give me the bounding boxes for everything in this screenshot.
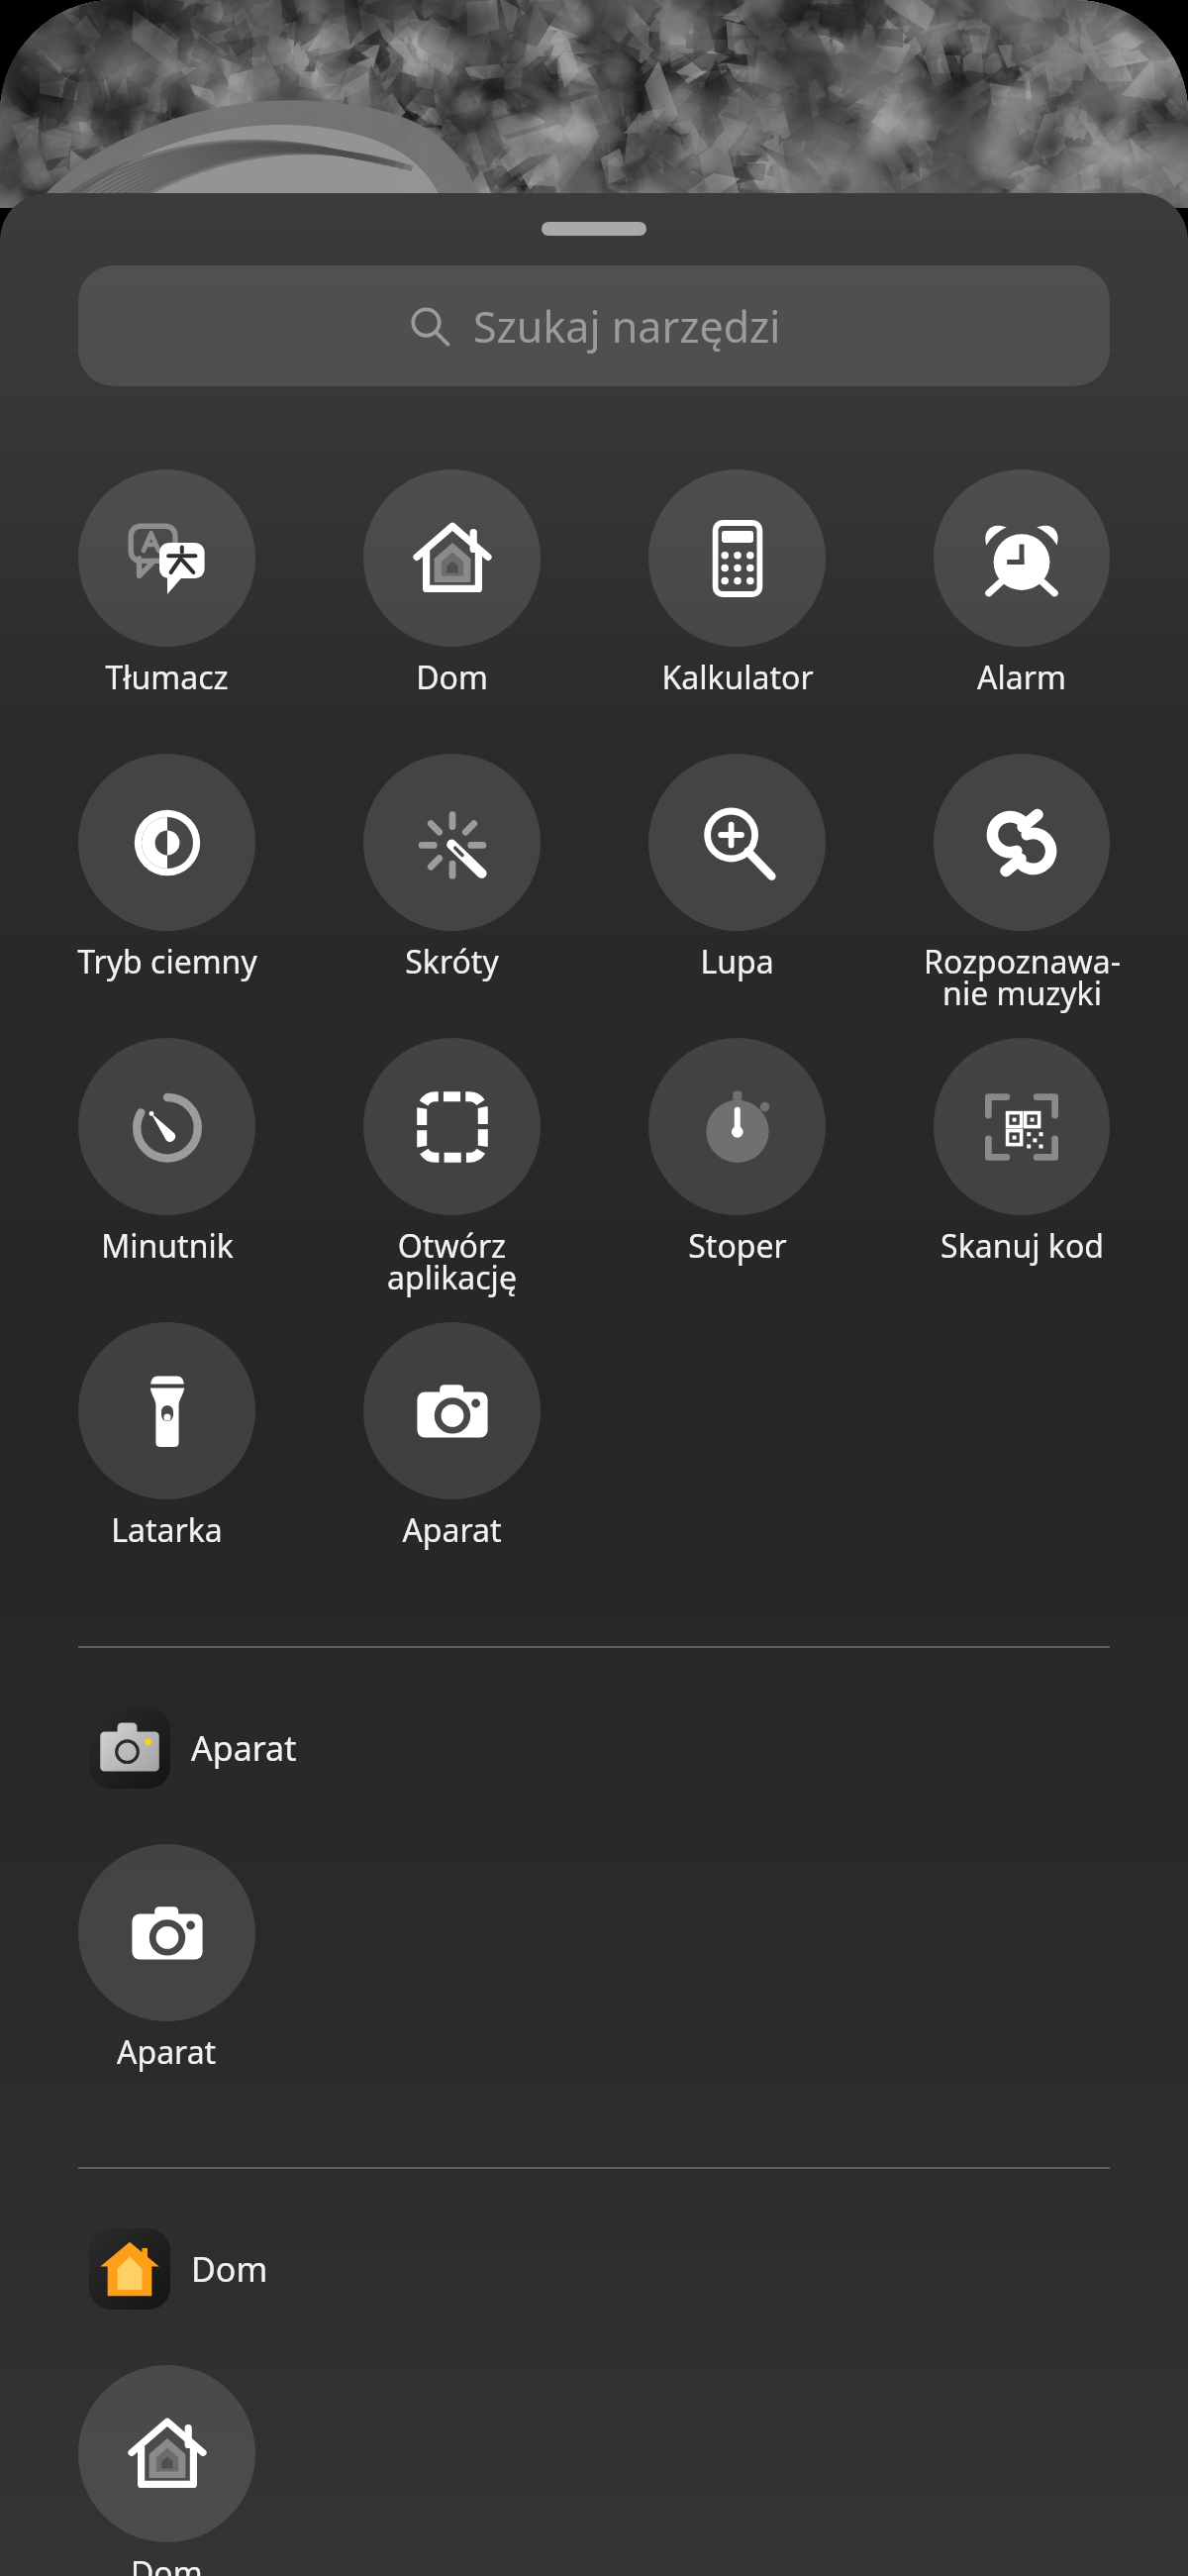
button[interactable]: Kalkulator xyxy=(648,469,826,699)
staticText: Dom xyxy=(131,2551,203,2576)
staticText: Otwórz aplikację xyxy=(387,1224,517,1298)
staticText: Kalkulator xyxy=(661,656,814,699)
staticText: Alarm xyxy=(977,656,1066,699)
button[interactable]: Alarm xyxy=(934,469,1110,699)
staticText: Dom xyxy=(191,2246,268,2292)
button[interactable]: Drag handle xyxy=(542,222,646,236)
button[interactable]: Dom xyxy=(363,469,541,699)
staticText: Stoper xyxy=(688,1224,787,1268)
button[interactable]: Stoper xyxy=(648,1038,826,1268)
button[interactable]: Tryb ciemny xyxy=(78,754,255,983)
button[interactable]: Aparat xyxy=(89,1707,297,1789)
button[interactable]: Latarka xyxy=(78,1322,255,1552)
button[interactable]: Otwórz aplikację xyxy=(363,1038,541,1298)
button[interactable]: Aparat xyxy=(78,1844,255,2074)
staticText: Tryb ciemny xyxy=(77,940,257,983)
staticText: Aparat xyxy=(402,1508,502,1552)
staticText: Skróty xyxy=(405,940,499,983)
button[interactable]: Dom xyxy=(78,2365,255,2576)
staticText: Skanuj kod xyxy=(940,1224,1104,1268)
staticText: Aparat xyxy=(117,2030,217,2074)
staticText: Szukaj narzędzi xyxy=(473,297,781,356)
button[interactable]: Skróty xyxy=(363,754,541,983)
staticText: Minutnik xyxy=(101,1224,234,1268)
button[interactable]: Tłumacz xyxy=(78,469,255,699)
staticText: Dom xyxy=(416,656,488,699)
staticText: Lupa xyxy=(700,940,774,983)
button[interactable]: Szukaj narzędzi xyxy=(78,265,1110,386)
button[interactable]: Aparat xyxy=(363,1322,541,1552)
staticText: Aparat xyxy=(191,1725,297,1771)
button[interactable]: Rozpoznawa- nie muzyki xyxy=(934,754,1110,1014)
button[interactable]: Lupa xyxy=(648,754,826,983)
button[interactable]: Dom xyxy=(89,2228,268,2310)
staticText: Tłumacz xyxy=(105,656,229,699)
button[interactable]: Minutnik xyxy=(78,1038,255,1268)
staticText: Latarka xyxy=(111,1508,223,1552)
staticText: Rozpoznawa- nie muzyki xyxy=(924,940,1121,1014)
button[interactable]: Skanuj kod xyxy=(934,1038,1110,1268)
